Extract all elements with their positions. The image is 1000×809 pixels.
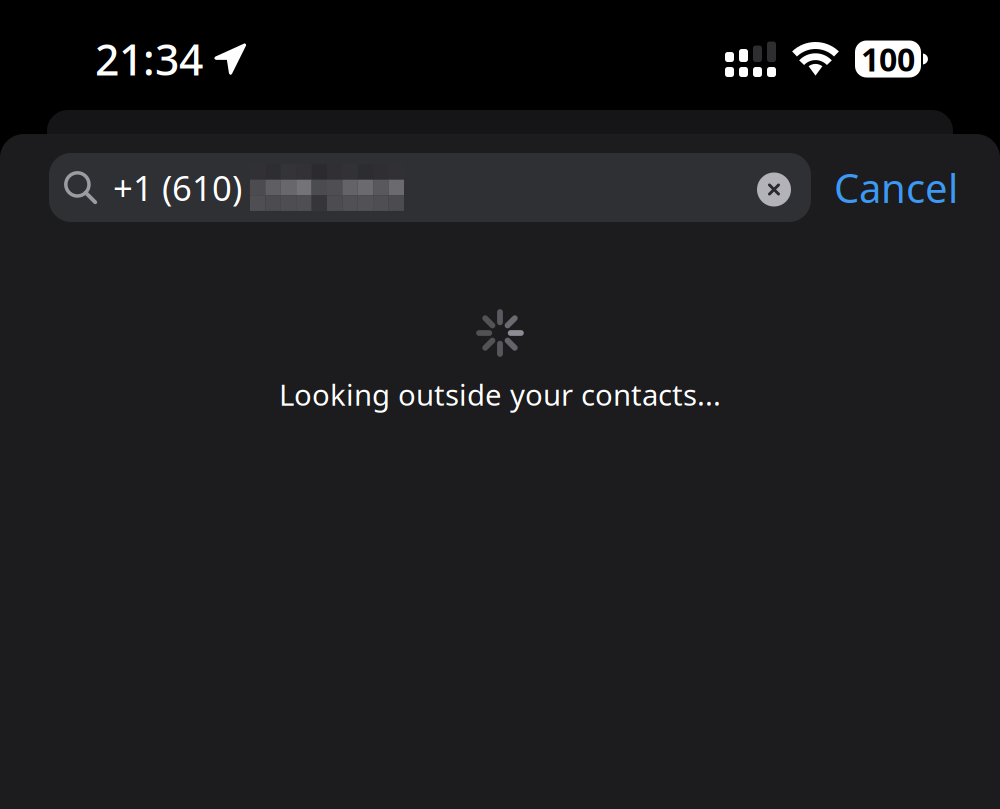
- button[interactable]: Cancel: [811, 153, 971, 222]
- staticText: 100: [861, 38, 915, 80]
- staticText: Cancel: [834, 161, 958, 214]
- button[interactable]: Clear text: [744, 151, 811, 224]
- staticText: +1 (610): [113, 164, 242, 210]
- staticText: Looking outside your contacts...: [279, 375, 721, 414]
- staticText: 21:34: [95, 31, 203, 87]
- button[interactable]: +1 (610): [49, 153, 744, 222]
